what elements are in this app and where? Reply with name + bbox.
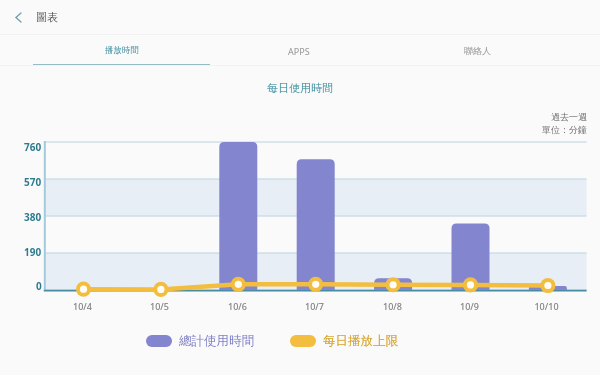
staticText: 單位：分鐘 — [542, 124, 587, 135]
button[interactable]: 總計使用時間 — [146, 333, 254, 349]
staticText: 380 — [24, 210, 42, 224]
button[interactable]: Back — [0, 0, 36, 34]
button[interactable]: 聯絡人 — [388, 35, 566, 66]
staticText: 每日播放上限 — [323, 333, 398, 349]
staticText: 10/8 — [383, 300, 402, 312]
staticText: 過去一週 — [551, 111, 587, 122]
button[interactable]: 播放時間 — [33, 35, 210, 66]
staticText: 10/10 — [534, 300, 559, 312]
staticText: 10/4 — [73, 300, 92, 312]
staticText: APPS — [288, 45, 310, 57]
staticText: 10/6 — [228, 300, 247, 312]
staticText: 10/7 — [305, 300, 324, 312]
staticText: 聯絡人 — [464, 45, 491, 56]
staticText: 760 — [24, 140, 42, 154]
staticText: 播放時間 — [105, 45, 139, 56]
button[interactable]: APPS — [210, 35, 388, 66]
staticText: 10/5 — [150, 300, 169, 312]
button[interactable]: 每日播放上限 — [290, 333, 398, 349]
staticText: 圖表 — [36, 10, 58, 24]
staticText: 190 — [24, 245, 42, 259]
staticText: 總計使用時間 — [179, 333, 254, 349]
staticText: 10/9 — [460, 300, 479, 312]
staticText: 570 — [24, 175, 42, 189]
staticText: 0 — [36, 279, 42, 293]
staticText: 每日使用時間 — [267, 81, 333, 95]
